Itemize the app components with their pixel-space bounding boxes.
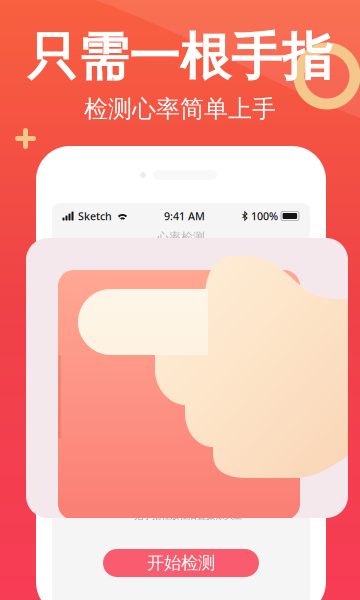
button[interactable]: 开始检测: [103, 549, 259, 577]
staticText: 心率检测: [157, 230, 205, 245]
staticText: 检测心率简单上手: [84, 94, 276, 124]
staticText: 把手指轻放在后置摄像头上: [134, 510, 242, 521]
staticText: 只需一根手指: [27, 26, 333, 88]
staticText: Sketch: [78, 209, 112, 223]
staticText: 开始检测: [147, 552, 215, 574]
staticText: 100%: [251, 209, 278, 223]
staticText: 9:41 AM: [164, 209, 205, 223]
